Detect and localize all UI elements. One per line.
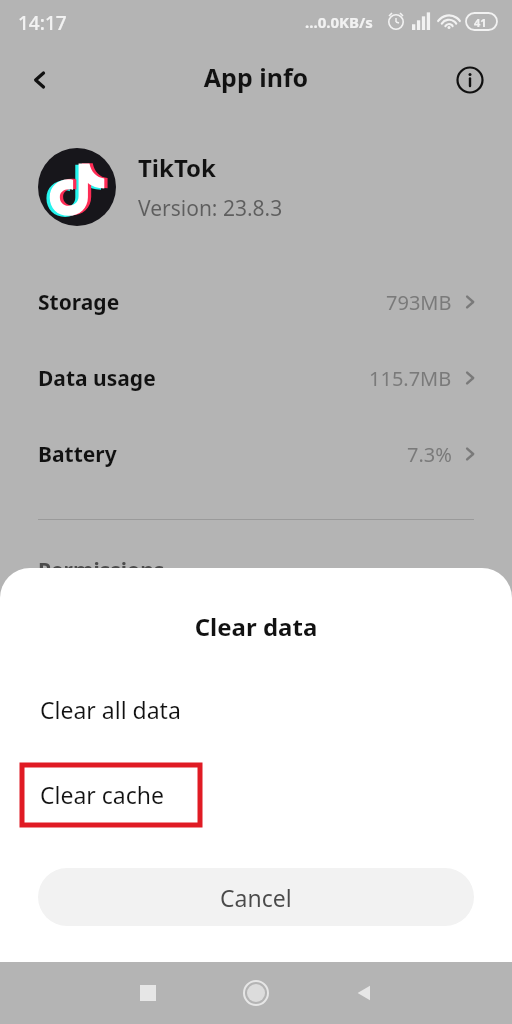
staticText: Data usage [38, 364, 156, 393]
button[interactable]: Cancel [38, 868, 474, 926]
button[interactable]: Battery [0, 430, 512, 478]
staticText: Battery [38, 440, 117, 469]
staticText: App info [0, 60, 512, 94]
button[interactable]: About app [446, 56, 494, 104]
button[interactable]: Home [232, 969, 280, 1017]
staticText: 7.3% [407, 441, 452, 468]
staticText: 14:17 [18, 10, 67, 36]
staticText: Cancel [220, 882, 292, 913]
staticText: Permissions [38, 556, 165, 585]
staticText: Clear all data [40, 694, 181, 725]
staticText: 115.7MB [369, 365, 452, 392]
button[interactable]: Back [16, 56, 64, 104]
button[interactable]: Recent apps [124, 969, 172, 1017]
button[interactable]: Clear cache [0, 765, 512, 823]
staticText: Clear data [0, 610, 512, 643]
button[interactable]: Data usage [0, 354, 512, 402]
staticText: Storage [38, 288, 120, 317]
staticText: 41 [474, 15, 487, 30]
button[interactable]: Clear all data [0, 680, 512, 738]
staticText: Clear cache [40, 779, 164, 810]
staticText: Version: 23.8.3 [138, 194, 283, 223]
staticText: ...0.0KB/s [305, 12, 373, 32]
button[interactable]: Back [340, 969, 388, 1017]
staticText: 793MB [386, 289, 452, 316]
staticText: TikTok [138, 151, 216, 184]
button[interactable]: Storage [0, 278, 512, 326]
